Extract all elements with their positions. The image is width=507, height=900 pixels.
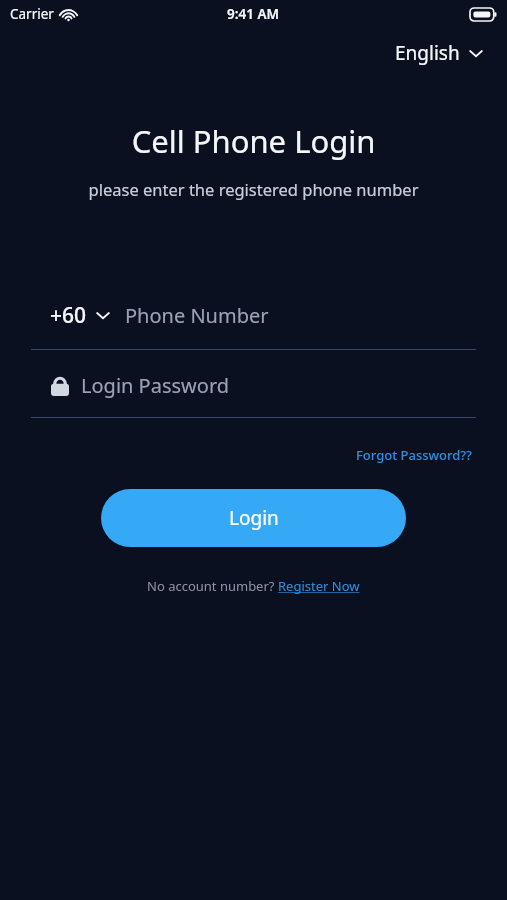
other: Password xyxy=(51,375,69,396)
staticText: English xyxy=(395,40,460,66)
staticText: Login Password xyxy=(81,372,230,399)
staticText: please enter the registered phone number xyxy=(0,178,507,200)
staticText: No account number? xyxy=(147,577,278,595)
button[interactable]: English xyxy=(371,34,507,72)
button[interactable]: No account number? xyxy=(0,577,507,595)
staticText: +60 xyxy=(50,301,87,330)
button[interactable]: Forgot Password?? xyxy=(352,442,476,468)
staticText: Phone Number xyxy=(125,302,269,329)
staticText: Login xyxy=(229,505,279,531)
staticText: Cell Phone Login xyxy=(0,120,507,162)
staticText: Register Now xyxy=(278,577,360,595)
staticText: Carrier xyxy=(10,5,54,23)
button[interactable]: +60 xyxy=(31,301,118,330)
button[interactable]: Login xyxy=(101,489,406,547)
staticText: 9:41 AM xyxy=(227,5,280,23)
